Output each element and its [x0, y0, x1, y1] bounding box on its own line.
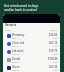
staticText: Vision: [12, 65, 20, 69]
staticText: Today: [5, 28, 12, 31]
staticText: $18.75: [49, 49, 58, 53]
staticText: See all: [50, 28, 58, 31]
button[interactable]: Dental: [3, 56, 60, 64]
staticText: Dental: [12, 57, 21, 61]
staticText: Feb 14: [12, 69, 20, 72]
staticText: Pharmacy: [12, 33, 25, 37]
staticText: Paid: [53, 45, 58, 48]
staticText: Feb 24: [12, 61, 20, 64]
staticText: $47.30: [49, 65, 58, 69]
staticText: $62.10: [49, 41, 58, 45]
button[interactable]: Clinic visit: [3, 40, 60, 48]
staticText: Paid: [53, 61, 58, 64]
staticText: Clinic visit: [12, 41, 25, 45]
staticText: Paid: [53, 53, 58, 56]
staticText: Lab work: [12, 49, 24, 53]
staticText: Recents: [5, 23, 17, 27]
staticText: and be back in control: [4, 8, 37, 12]
staticText: Paid: [53, 69, 58, 72]
staticText: Paid: [53, 37, 58, 40]
staticText: $24.00: [49, 33, 58, 37]
staticText: $105.00: [48, 57, 58, 61]
staticText: Mar 09: [12, 45, 20, 48]
button[interactable]: Vision: [3, 64, 60, 72]
staticText: Get reimbursed in days: [4, 4, 39, 8]
staticText: Mar 02: [12, 53, 20, 56]
button[interactable]: Lab work: [3, 48, 60, 56]
staticText: Mar 12: [12, 37, 20, 40]
button[interactable]: Pharmacy: [3, 32, 60, 40]
